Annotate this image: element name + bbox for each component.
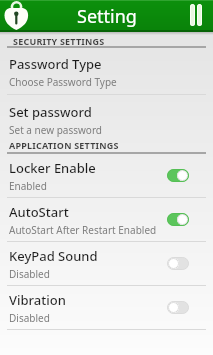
staticText: KeyPad Sound xyxy=(9,247,98,265)
button[interactable]: Vibration xyxy=(9,286,189,329)
staticText: Enabled xyxy=(9,179,47,193)
button[interactable]: Password Type xyxy=(0,48,213,94)
staticText: Disabled xyxy=(9,311,50,325)
button[interactable]: Locker Enable xyxy=(9,154,189,197)
staticText: APPLICATION SETTINGS xyxy=(9,139,119,151)
staticText: Disabled xyxy=(9,267,50,281)
button[interactable]: AutoStart xyxy=(9,198,189,241)
staticText: AutoStart After Restart Enabled xyxy=(9,223,157,237)
button[interactable]: Set password xyxy=(0,95,213,138)
staticText: Locker Enable xyxy=(9,159,96,177)
staticText: SECURITY SETTINGS xyxy=(13,35,105,47)
staticText: Set password xyxy=(9,103,92,121)
staticText: Vibration xyxy=(9,291,66,309)
staticText: Choose Password Type xyxy=(9,75,117,89)
staticText: Set a new password xyxy=(9,123,102,137)
button[interactable] xyxy=(0,0,32,32)
button[interactable]: KeyPad Sound xyxy=(9,242,189,285)
staticText: AutoStart xyxy=(9,203,69,221)
staticText: Setting xyxy=(77,4,137,29)
button[interactable] xyxy=(190,4,202,26)
staticText: Password Type xyxy=(9,55,102,73)
